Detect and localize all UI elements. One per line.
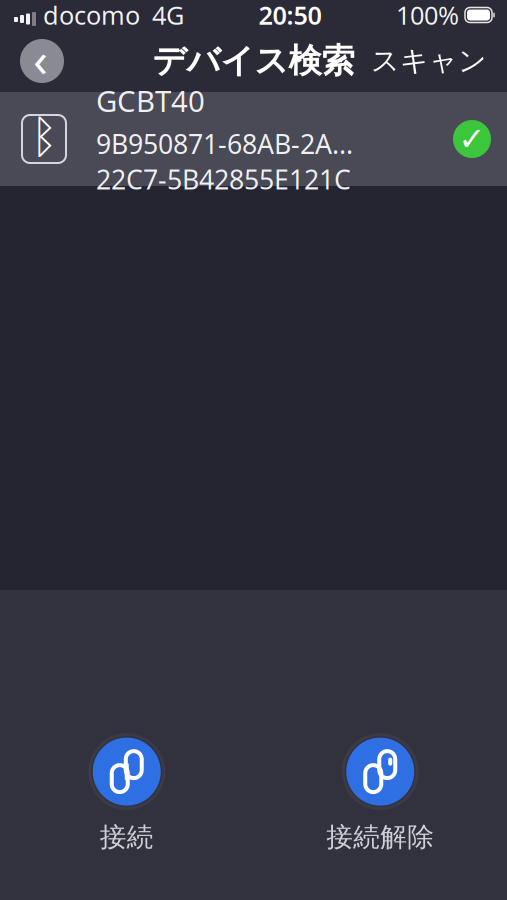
button[interactable]: 戻る [14,33,70,89]
staticText: ‹ [33,27,48,90]
staticText: 100% [396,0,459,32]
staticText: 接続 [100,821,154,853]
staticText: docomo [43,0,140,32]
staticText: ᛒ [30,117,57,161]
button[interactable]: 接続 [67,735,187,853]
staticText: GCBT40 [96,81,205,120]
staticText: 20:50 [258,0,321,32]
staticText: 接続解除 [326,821,434,853]
staticText: 4G [152,0,184,32]
staticText: デバイス検索 [152,40,354,81]
button[interactable]: スキャン [361,32,497,90]
button[interactable]: ᛒ [0,92,507,186]
staticText: スキャン [371,44,487,78]
button[interactable]: 接続解除 [320,735,440,853]
staticText: ✓ [458,121,485,157]
staticText: 9B950871-68AB-2A...22C7-5B42855E121C [96,126,353,197]
